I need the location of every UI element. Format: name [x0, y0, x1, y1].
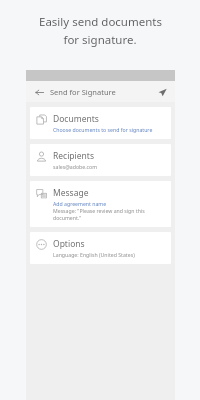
staticText: Message: "Please review and sign this — [53, 207, 145, 214]
staticText: document." — [53, 214, 82, 221]
button[interactable]: Recipients — [30, 144, 171, 176]
staticText: Choose documents to send for signature — [53, 126, 153, 133]
staticText: Language: English (United States) — [53, 251, 135, 258]
staticText: Easily send documents — [39, 14, 162, 30]
button[interactable]: Back — [31, 84, 47, 100]
staticText: for signature. — [63, 32, 137, 48]
button[interactable]: Send — [154, 84, 170, 100]
button[interactable]: Options — [30, 232, 171, 264]
staticText: Recipients — [53, 150, 94, 162]
staticText: sales@adobe.com — [53, 163, 98, 170]
staticText: Message — [53, 187, 89, 199]
button[interactable]: Message — [30, 181, 171, 227]
button[interactable]: Documents — [30, 107, 171, 139]
staticText: Options — [53, 238, 85, 250]
staticText: Add agreement name — [53, 200, 107, 207]
staticText: Documents — [53, 113, 99, 125]
staticText: Send for Signature — [50, 87, 116, 97]
